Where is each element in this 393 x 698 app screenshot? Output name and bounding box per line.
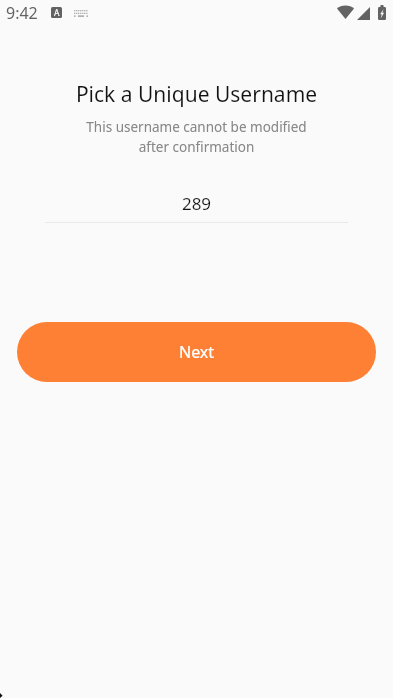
button[interactable]: Next (17, 322, 376, 382)
staticText: This username cannot be modified after c… (0, 118, 393, 156)
button[interactable]: 289 (45, 188, 348, 223)
staticText: Next (179, 341, 215, 363)
other: Accessibility (51, 7, 62, 18)
staticText: 289 (45, 192, 348, 215)
other: Signal (357, 7, 370, 20)
other: Keyboard (74, 10, 88, 17)
other: Wifi (337, 6, 354, 19)
staticText: Pick a Unique Username (0, 80, 393, 109)
staticText: 9:42 (6, 2, 38, 24)
staticText: A (54, 7, 60, 18)
other: Battery charging (378, 5, 386, 20)
